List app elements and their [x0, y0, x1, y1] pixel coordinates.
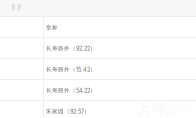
- staticText: 坐标: [46, 24, 58, 31]
- button[interactable]: 长寿路外（54.22）: [46, 80, 196, 101]
- staticText: 长寿路外（54.22）: [46, 87, 96, 94]
- staticText: 大神: [137, 100, 165, 118]
- staticText: 朱家园（92.57）: [46, 108, 90, 115]
- button[interactable]: 朱家园（92.57）: [46, 101, 196, 118]
- button[interactable]: 长寿路外（92.22）: [46, 38, 196, 59]
- button[interactable]: 坐标: [46, 17, 196, 38]
- staticText: 长寿路外（92.22）: [46, 45, 96, 52]
- staticText: 长寿路外（15.42）: [46, 66, 96, 73]
- button[interactable]: 长寿路外（15.42）: [46, 59, 196, 80]
